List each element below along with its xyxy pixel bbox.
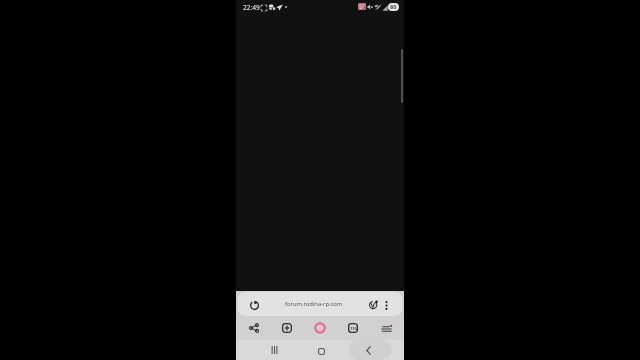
button[interactable]: forum.rodina-rp.com	[238, 292, 402, 316]
button[interactable]: Tabs: 116	[340, 316, 366, 340]
button[interactable]: Home	[307, 316, 333, 340]
button[interactable]: Privacy dashboard	[366, 297, 381, 312]
button[interactable]: Reload page	[246, 297, 262, 313]
button[interactable]: Recent apps	[252, 340, 296, 360]
button[interactable]: Menu	[373, 316, 399, 340]
button[interactable]: New tab	[274, 316, 300, 340]
button[interactable]: Home	[299, 341, 343, 360]
button[interactable]: More options	[379, 298, 393, 312]
button[interactable]: Share	[241, 316, 267, 340]
staticText: 22:49	[243, 3, 260, 12]
staticText: forum.rodina-rp.com	[285, 300, 343, 308]
staticText: 116	[350, 326, 357, 331]
staticText: 80	[390, 3, 397, 11]
button[interactable]: Back	[348, 340, 392, 360]
